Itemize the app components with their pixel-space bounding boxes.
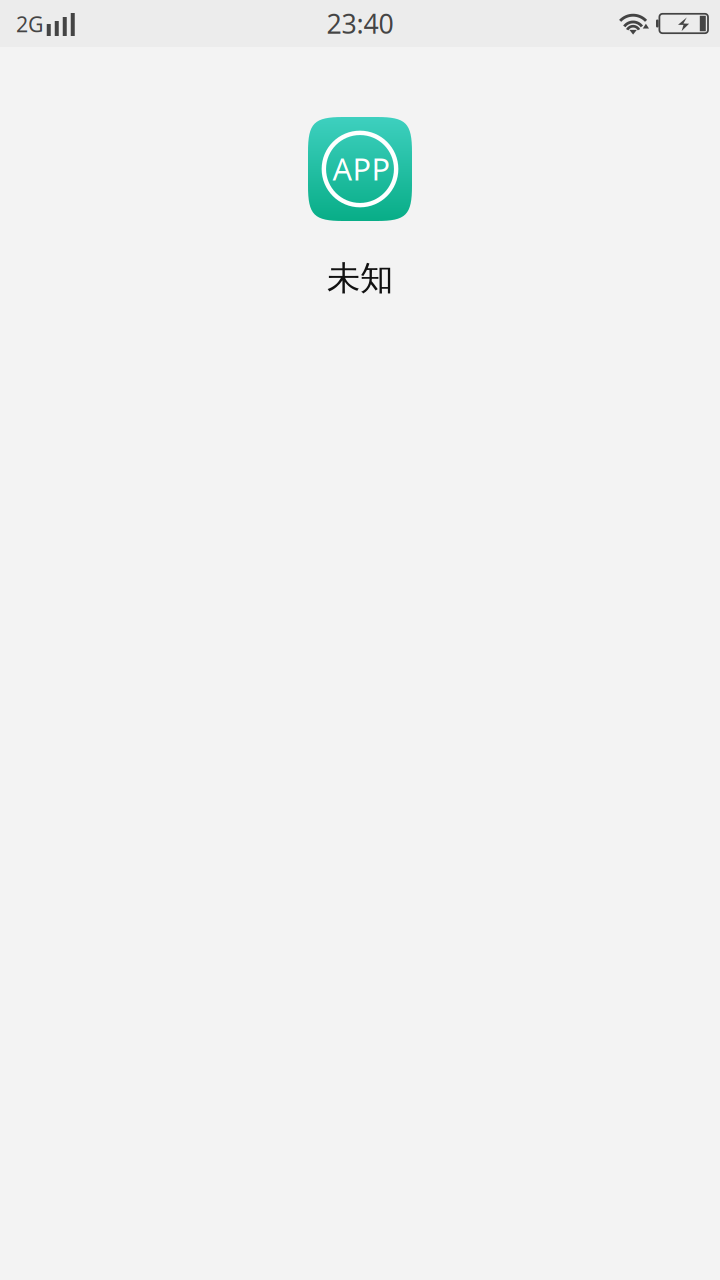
staticText: APP — [332, 148, 390, 189]
staticText: 23:40 — [326, 6, 393, 41]
button[interactable]: APP — [308, 117, 412, 299]
staticText: 未知 — [327, 258, 393, 299]
staticText: 2G — [16, 10, 44, 38]
